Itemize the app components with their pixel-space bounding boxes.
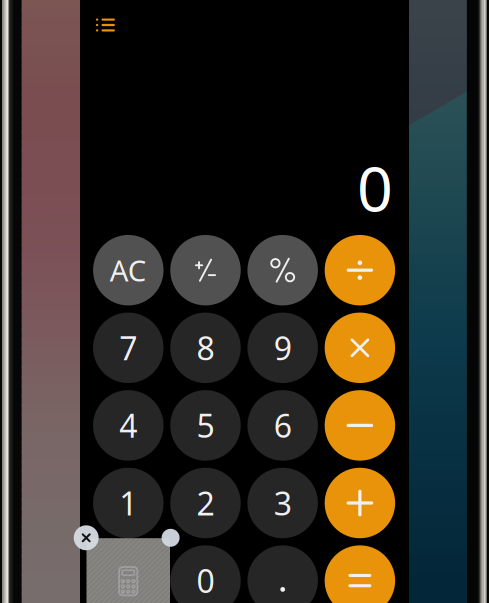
button[interactable]: Equals	[325, 545, 395, 603]
staticText: 0	[357, 146, 393, 229]
button[interactable]: Percent	[247, 235, 318, 305]
staticText: AC	[110, 251, 147, 290]
button[interactable]: 8	[170, 312, 241, 383]
button[interactable]: Multiply	[325, 312, 395, 383]
button[interactable]: History	[83, 5, 127, 45]
button[interactable]: Divide	[325, 235, 395, 305]
staticText: 6	[274, 404, 292, 447]
button[interactable]: 2	[170, 468, 241, 538]
staticText: 3	[274, 482, 292, 524]
button[interactable]: 6	[247, 390, 318, 461]
button[interactable]: Plus	[325, 468, 395, 538]
button[interactable]: Calculator mode	[93, 545, 164, 603]
staticText: 1	[119, 482, 137, 524]
button[interactable]: Remove widget	[74, 525, 99, 550]
staticText: 8	[196, 327, 214, 369]
button[interactable]: Plus Minus	[170, 235, 241, 305]
staticText: 0	[196, 559, 214, 602]
button[interactable]: 1	[93, 468, 164, 538]
button[interactable]: 5	[170, 390, 241, 461]
button[interactable]: 0	[170, 545, 241, 603]
staticText: 9	[274, 327, 292, 369]
staticText: 2	[196, 482, 214, 524]
button[interactable]: 3	[247, 468, 318, 538]
button[interactable]: Decimal point	[247, 545, 318, 603]
button[interactable]: AC	[93, 235, 164, 305]
staticText: 5	[196, 404, 214, 447]
staticText: 4	[119, 404, 137, 447]
button[interactable]: Minus	[325, 390, 395, 461]
button[interactable]: 9	[247, 312, 318, 383]
staticText: 7	[119, 327, 137, 369]
button[interactable]: 7	[93, 312, 164, 383]
button[interactable]: 4	[93, 390, 164, 461]
